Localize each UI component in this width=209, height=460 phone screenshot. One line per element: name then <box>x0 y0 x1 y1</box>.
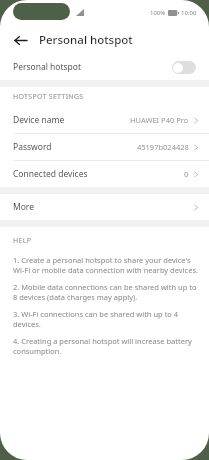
staticText: 10:00 <box>181 9 197 17</box>
staticText: Personal hotspot <box>13 61 82 73</box>
button[interactable]: More <box>0 194 209 220</box>
staticText: 2. Mobile data connections can be shared… <box>13 282 200 302</box>
staticText: 3. Wi-Fi connections can be shared with … <box>13 309 200 329</box>
staticText: Device name <box>13 114 65 126</box>
button[interactable]: Device name <box>0 107 209 133</box>
staticText: 100% <box>150 9 166 17</box>
button[interactable]: Connected devices <box>0 161 209 187</box>
staticText: HOTSPOT SETTINGS <box>13 92 84 102</box>
staticText: 1. Create a personal hotspot to share yo… <box>13 255 200 275</box>
staticText: Personal hotspot <box>39 32 133 48</box>
button[interactable]: Back <box>9 29 31 51</box>
staticText: 4. Creating a personal hotspot will incr… <box>13 336 200 356</box>
staticText: More <box>13 201 34 213</box>
staticText: 45197b024428 <box>137 142 189 152</box>
staticText: Connected devices <box>13 168 88 180</box>
staticText: HELP <box>13 236 32 246</box>
staticText: 0 <box>184 169 189 179</box>
staticText: Password <box>13 141 52 153</box>
staticText: HUAWEI P40 Pro <box>130 115 189 125</box>
button[interactable]: Personal hotspot <box>0 54 209 80</box>
button[interactable]: Password <box>0 134 209 160</box>
